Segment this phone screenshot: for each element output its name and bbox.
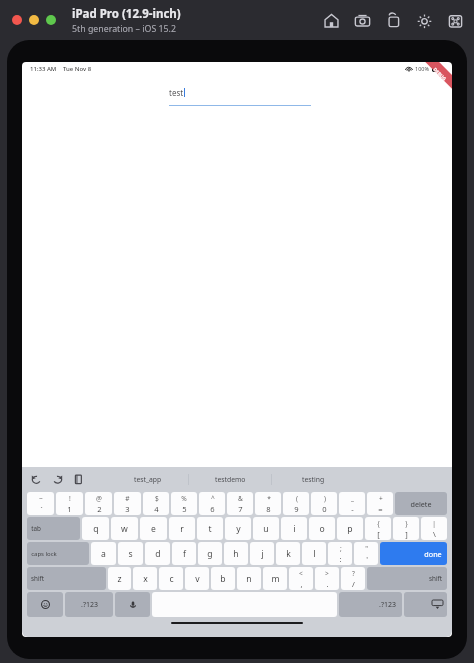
button[interactable]: ( (283, 492, 309, 515)
button[interactable]: * (255, 492, 281, 515)
button[interactable]: q (82, 517, 109, 540)
button[interactable]: Screenshot (354, 12, 371, 29)
button[interactable]: d (145, 542, 170, 565)
staticText: delete (410, 499, 432, 509)
button[interactable]: shift (27, 567, 106, 590)
button[interactable]: k (276, 542, 300, 565)
button[interactable]: f (172, 542, 196, 565)
button[interactable]: h (224, 542, 248, 565)
staticText: a (101, 548, 106, 560)
button[interactable]: ^ (199, 492, 225, 515)
staticText: u (263, 523, 269, 535)
button[interactable]: @ (85, 492, 112, 515)
button[interactable]: Minimize (29, 15, 39, 25)
staticText: . (326, 579, 329, 589)
button[interactable]: Hide keyboard (404, 592, 447, 617)
button[interactable]: e (140, 517, 167, 540)
button[interactable]: r (169, 517, 195, 540)
button[interactable]: c (159, 567, 183, 590)
button[interactable]: ~ (27, 492, 54, 515)
staticText: testing (302, 475, 325, 484)
button[interactable]: Undo (30, 473, 43, 486)
button[interactable]: i (281, 517, 307, 540)
button[interactable]: testdemo (189, 467, 271, 491)
button[interactable]: Brightness (416, 12, 433, 29)
staticText: ? (352, 569, 355, 578)
button[interactable]: Close (12, 15, 22, 25)
button[interactable]: Paste (72, 473, 85, 486)
staticText: ! (69, 494, 71, 503)
staticText: 11:33 AM (30, 65, 57, 73)
button[interactable]: done (380, 542, 447, 565)
button[interactable]: Emoji (27, 592, 63, 617)
button[interactable]: y (225, 517, 251, 540)
button[interactable]: g (198, 542, 222, 565)
button[interactable]: testing (272, 467, 354, 491)
button[interactable]: s (118, 542, 143, 565)
button[interactable]: .?123 (65, 592, 113, 617)
button[interactable]: test_app (107, 467, 188, 491)
button[interactable]: b (211, 567, 235, 590)
button[interactable]: shift (367, 567, 447, 590)
button[interactable]: v (185, 567, 209, 590)
button[interactable]: caps lock (27, 542, 89, 565)
button[interactable]: Keyboard shortcuts (447, 12, 464, 29)
button[interactable]: Dictate (115, 592, 150, 617)
button[interactable]: .?123 (339, 592, 402, 617)
button[interactable]: ! (56, 492, 83, 515)
staticText: # (125, 494, 130, 503)
staticText: i (293, 523, 296, 535)
button[interactable]: > (315, 567, 339, 590)
button[interactable]: u (253, 517, 279, 540)
button[interactable]: { (365, 517, 391, 540)
staticText: ~ (39, 494, 43, 503)
button[interactable]: } (393, 517, 419, 540)
button[interactable]: z (108, 567, 131, 590)
button[interactable]: | (421, 517, 447, 540)
staticText: e (151, 523, 156, 535)
button[interactable]: ) (311, 492, 337, 515)
button[interactable]: ? (341, 567, 365, 590)
button[interactable]: # (114, 492, 141, 515)
button[interactable]: j (250, 542, 274, 565)
button[interactable]: % (171, 492, 197, 515)
button[interactable]: t (197, 517, 223, 540)
button[interactable]: m (263, 567, 287, 590)
button[interactable]: + (367, 492, 393, 515)
button[interactable]: Zoom (46, 15, 56, 25)
button[interactable]: _ (339, 492, 365, 515)
button[interactable]: Redo (51, 473, 64, 486)
staticText: 2 (97, 504, 102, 514)
staticText: n (246, 573, 252, 585)
staticText: .?123 (81, 600, 98, 610)
button[interactable]: ; (328, 542, 352, 565)
button[interactable]: w (111, 517, 138, 540)
button[interactable]: Rotate (385, 12, 402, 29)
staticText: h (233, 548, 239, 560)
button[interactable]: p (337, 517, 363, 540)
button[interactable]: Home (323, 12, 340, 29)
staticText: \ (433, 529, 436, 539)
staticText: > (325, 569, 329, 578)
button[interactable]: tab (27, 517, 80, 540)
staticText: % (181, 494, 187, 503)
staticText: done (424, 549, 442, 559)
button[interactable]: < (289, 567, 313, 590)
staticText: .?123 (379, 600, 396, 610)
button[interactable]: a (91, 542, 116, 565)
staticText: test (169, 87, 184, 98)
button[interactable]: o (309, 517, 335, 540)
button[interactable]: $ (143, 492, 169, 515)
button[interactable]: & (227, 492, 253, 515)
button[interactable]: n (237, 567, 261, 590)
button[interactable]: l (302, 542, 326, 565)
staticText: < (299, 569, 303, 578)
staticText: ( (296, 494, 298, 503)
button[interactable]: delete (395, 492, 447, 515)
other: Emoji (41, 600, 50, 609)
button[interactable]: " (354, 542, 378, 565)
button[interactable]: x (133, 567, 157, 590)
